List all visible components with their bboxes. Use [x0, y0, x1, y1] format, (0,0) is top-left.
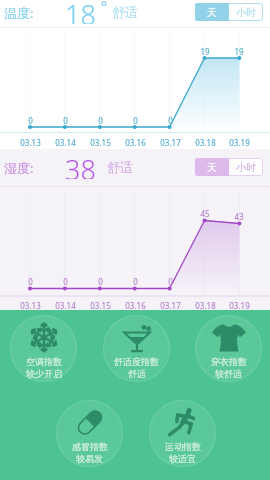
staticText: 舒适 — [128, 368, 146, 379]
button[interactable]: 天 — [195, 3, 229, 21]
staticText: 0 — [133, 276, 138, 287]
staticText: 舒适度指数 — [114, 356, 159, 367]
staticText: 03.19 — [229, 137, 250, 148]
staticText: 03.19 — [229, 300, 250, 311]
staticText: 小时 — [236, 6, 256, 19]
staticText: 03.15 — [90, 137, 111, 148]
staticText: 0 — [168, 276, 173, 287]
staticText: 38 — [65, 151, 96, 179]
staticText: 运动指数 — [165, 441, 201, 452]
staticText: 舒适 — [107, 159, 133, 175]
staticText: 湿度: — [4, 159, 34, 177]
staticText: 19 — [234, 46, 244, 57]
staticText: 03.14 — [55, 300, 76, 311]
staticText: 03.13 — [20, 137, 41, 148]
button[interactable]: 感冒指数 — [55, 399, 124, 468]
staticText: 空调指数 — [26, 356, 62, 367]
staticText: 03.16 — [125, 137, 146, 148]
staticText: 较适宜 — [169, 453, 196, 464]
staticText: 0 — [63, 115, 68, 126]
staticText: 03.15 — [90, 300, 111, 311]
staticText: 0 — [133, 115, 138, 126]
staticText: 43 — [234, 211, 244, 222]
button[interactable]: 小时 — [229, 3, 263, 21]
staticText: 18 — [65, 0, 96, 24]
button[interactable]: 舒适度指数 — [102, 314, 171, 383]
button[interactable]: 运动指数 — [148, 399, 217, 468]
button[interactable]: 小时 — [229, 158, 263, 176]
staticText: 03.17 — [160, 300, 181, 311]
staticText: 0 — [168, 115, 173, 126]
staticText: 小时 — [236, 161, 256, 174]
staticText: 0 — [28, 276, 33, 287]
staticText: 0 — [28, 115, 33, 126]
staticText: 03.18 — [195, 300, 216, 311]
staticText: 较少开启 — [26, 368, 62, 379]
staticText: 较舒适 — [215, 368, 242, 379]
staticText: 较易发 — [76, 453, 103, 464]
staticText: 天 — [207, 161, 217, 174]
staticText: 03.14 — [55, 137, 76, 148]
staticText: 温度: — [4, 4, 34, 22]
button[interactable]: 天 — [195, 158, 229, 176]
staticText: 03.13 — [20, 300, 41, 311]
button[interactable]: 穿衣指数 — [194, 314, 263, 383]
staticText: 03.17 — [160, 137, 181, 148]
staticText: 45 — [200, 208, 210, 219]
staticText: ° — [101, 0, 107, 16]
button[interactable]: 空调指数 — [9, 314, 78, 383]
staticText: 19 — [200, 46, 210, 57]
staticText: 天 — [207, 6, 217, 19]
staticText: 感冒指数 — [72, 441, 108, 452]
staticText: 舒适 — [112, 4, 138, 20]
staticText: 03.18 — [195, 137, 216, 148]
staticText: 0 — [63, 276, 68, 287]
staticText: 0 — [98, 115, 103, 126]
staticText: 穿衣指数 — [211, 356, 247, 367]
staticText: 0 — [98, 276, 103, 287]
staticText: 03.16 — [125, 300, 146, 311]
